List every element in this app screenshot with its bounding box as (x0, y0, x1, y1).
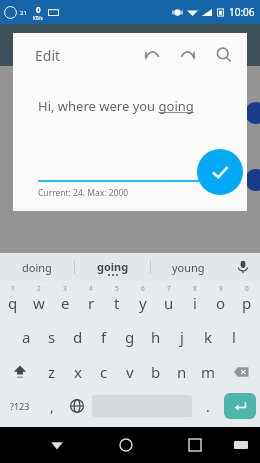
staticText: y (139, 293, 147, 313)
button[interactable]: Voice input (226, 253, 260, 281)
staticText: t (114, 293, 120, 313)
button[interactable]: 2 (26, 283, 52, 319)
staticText: Hi, where were you going (38, 97, 194, 115)
staticText: 0 (245, 284, 249, 293)
button[interactable]: 4 (78, 283, 104, 319)
staticText: ?123 (10, 400, 30, 412)
button[interactable]: 3 (52, 283, 78, 319)
button[interactable]: v (117, 355, 143, 389)
staticText: 2 (37, 284, 41, 293)
button[interactable]: ?123 (0, 389, 39, 423)
staticText: 6 (141, 284, 145, 293)
staticText: 21 (20, 9, 27, 17)
staticText: j (180, 327, 184, 347)
staticText: 3 (63, 284, 67, 293)
staticText: e (61, 293, 70, 313)
staticText: going (97, 259, 129, 274)
staticText: 9 (219, 284, 223, 293)
button[interactable]: m (195, 355, 221, 389)
button[interactable]: 5 (104, 283, 130, 319)
staticText: s (48, 327, 56, 347)
button[interactable]: g (117, 319, 143, 355)
button[interactable]: 9 (208, 283, 234, 319)
staticText: 10:06 (229, 5, 255, 19)
button[interactable]: . (195, 389, 220, 423)
button[interactable]: 0 (234, 283, 260, 319)
button[interactable]: j (169, 319, 195, 355)
staticText: n (177, 362, 187, 382)
button[interactable]: young (151, 253, 226, 281)
staticText: 5 (115, 284, 119, 293)
staticText: o (216, 293, 226, 313)
button[interactable]: Backspace (221, 355, 260, 389)
button[interactable]: k (195, 319, 221, 355)
staticText: i (193, 293, 197, 313)
button[interactable]: d (65, 319, 91, 355)
button[interactable]: h (143, 319, 169, 355)
staticText: k (204, 327, 213, 347)
button[interactable]: , (39, 389, 64, 423)
staticText: q (8, 293, 18, 313)
button[interactable]: going (75, 253, 150, 281)
staticText: h (151, 327, 161, 347)
button[interactable]: 8 (182, 283, 208, 319)
button[interactable]: x (65, 355, 91, 389)
button[interactable]: Recents (177, 427, 213, 463)
staticText: r (88, 293, 95, 313)
staticText: Current: 24. Max: 2000 (38, 187, 129, 199)
button[interactable]: s (39, 319, 65, 355)
button[interactable]: Enter (224, 393, 256, 419)
button[interactable]: Undo (139, 42, 165, 68)
staticText: w (33, 293, 45, 313)
staticText: l (232, 327, 236, 347)
staticText: x (74, 362, 82, 382)
button[interactable]: l (221, 319, 247, 355)
staticText: a (22, 327, 31, 347)
staticText: b (151, 362, 161, 382)
staticText: doing (22, 260, 52, 275)
staticText: . (206, 397, 210, 416)
staticText: 1 (11, 284, 15, 293)
staticText: , (50, 397, 54, 416)
button[interactable]: f (91, 319, 117, 355)
button[interactable]: n (169, 355, 195, 389)
button[interactable]: z (39, 355, 65, 389)
staticText: 0 (36, 4, 41, 15)
button[interactable]: b (143, 355, 169, 389)
staticText: KB/s (33, 15, 43, 21)
button[interactable]: a (13, 319, 39, 355)
staticText: p (242, 293, 252, 313)
staticText: g (125, 327, 135, 347)
staticText: 4 (89, 284, 93, 293)
button[interactable]: Redo (175, 42, 201, 68)
button[interactable]: doing (0, 253, 74, 281)
button[interactable]: c (91, 355, 117, 389)
button[interactable]: Home (108, 427, 144, 463)
staticText: Edit (35, 46, 61, 65)
button[interactable]: Shift (0, 355, 39, 389)
button[interactable]: 1 (0, 283, 26, 319)
button[interactable]: Back (39, 427, 75, 463)
button[interactable]: Search (211, 42, 237, 68)
button[interactable]: Change language (64, 389, 89, 423)
staticText: u (164, 293, 174, 313)
staticText: c (100, 362, 108, 382)
staticText: v (126, 362, 134, 382)
button[interactable]: 7 (156, 283, 182, 319)
staticText: d (73, 327, 83, 347)
staticText: 7 (167, 284, 171, 293)
staticText: 8 (193, 284, 197, 293)
button[interactable]: Confirm (197, 149, 243, 195)
staticText: young (172, 260, 205, 275)
staticText: m (201, 362, 216, 382)
staticText: f (101, 327, 107, 347)
button[interactable]: 6 (130, 283, 156, 319)
staticText: z (48, 362, 56, 382)
button[interactable]: Switch keyboard (226, 430, 256, 460)
